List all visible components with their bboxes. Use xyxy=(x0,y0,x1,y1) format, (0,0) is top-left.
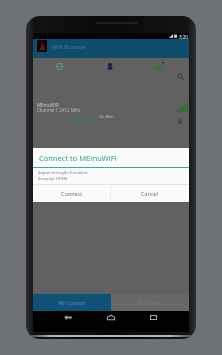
staticText: MEmuWiFi xyxy=(37,102,60,108)
button[interactable]: Cancel xyxy=(111,185,189,202)
staticText: Wifi Booster xyxy=(52,43,87,51)
button[interactable]: Signal graph xyxy=(146,58,172,74)
staticText: Connect xyxy=(61,190,83,197)
staticText: 3:20 xyxy=(179,34,188,40)
staticText: WiFi Connect xyxy=(58,300,86,306)
staticText: Channel 1 2412 MHz xyxy=(37,107,81,113)
staticText: Connect to MEmuWiFi xyxy=(39,153,117,163)
button[interactable]: Back xyxy=(60,311,76,324)
staticText: Cancel xyxy=(141,190,159,197)
button[interactable]: Connect xyxy=(33,185,110,202)
staticText: WiFi Graph xyxy=(138,300,162,306)
button[interactable]: Connected devices xyxy=(97,58,123,74)
staticText: Security: OPEN xyxy=(38,176,68,182)
staticText: Signal strength: Excellent xyxy=(38,170,88,176)
button[interactable]: Home xyxy=(103,311,119,324)
button[interactable]: MEmuWiFi xyxy=(33,100,189,128)
staticText: -36 dBm xyxy=(98,114,114,119)
button[interactable]: Recents xyxy=(145,311,161,324)
button[interactable]: Wifi scan xyxy=(46,58,72,74)
button[interactable]: Search xyxy=(176,72,185,81)
button[interactable]: WiFi Connect xyxy=(33,294,111,311)
